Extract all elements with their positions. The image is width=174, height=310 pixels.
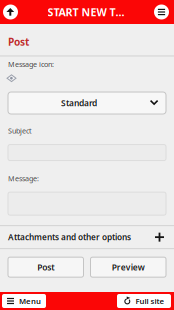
- staticText: Menu: [19, 296, 41, 306]
- button[interactable]: Post: [8, 257, 83, 277]
- staticText: Post: [8, 35, 29, 48]
- button[interactable]: Up: [3, 4, 18, 19]
- button[interactable]: Menu: [154, 4, 169, 19]
- staticText: Full site: [135, 296, 164, 306]
- staticText: Message:: [8, 174, 39, 183]
- staticText: START NEW T...: [47, 5, 124, 19]
- staticText: Attachments and other options: [8, 232, 131, 243]
- button[interactable]: Full site: [117, 294, 171, 308]
- staticText: Subject: [8, 126, 32, 136]
- staticText: Preview: [112, 261, 145, 273]
- staticText: Message icon:: [8, 59, 54, 69]
- button[interactable]: Menu: [2, 294, 46, 308]
- button[interactable]: Attachments and other options: [0, 228, 174, 246]
- staticText: Post: [37, 261, 54, 273]
- button[interactable]: Preview: [90, 257, 166, 277]
- staticText: Standard: [61, 97, 97, 109]
